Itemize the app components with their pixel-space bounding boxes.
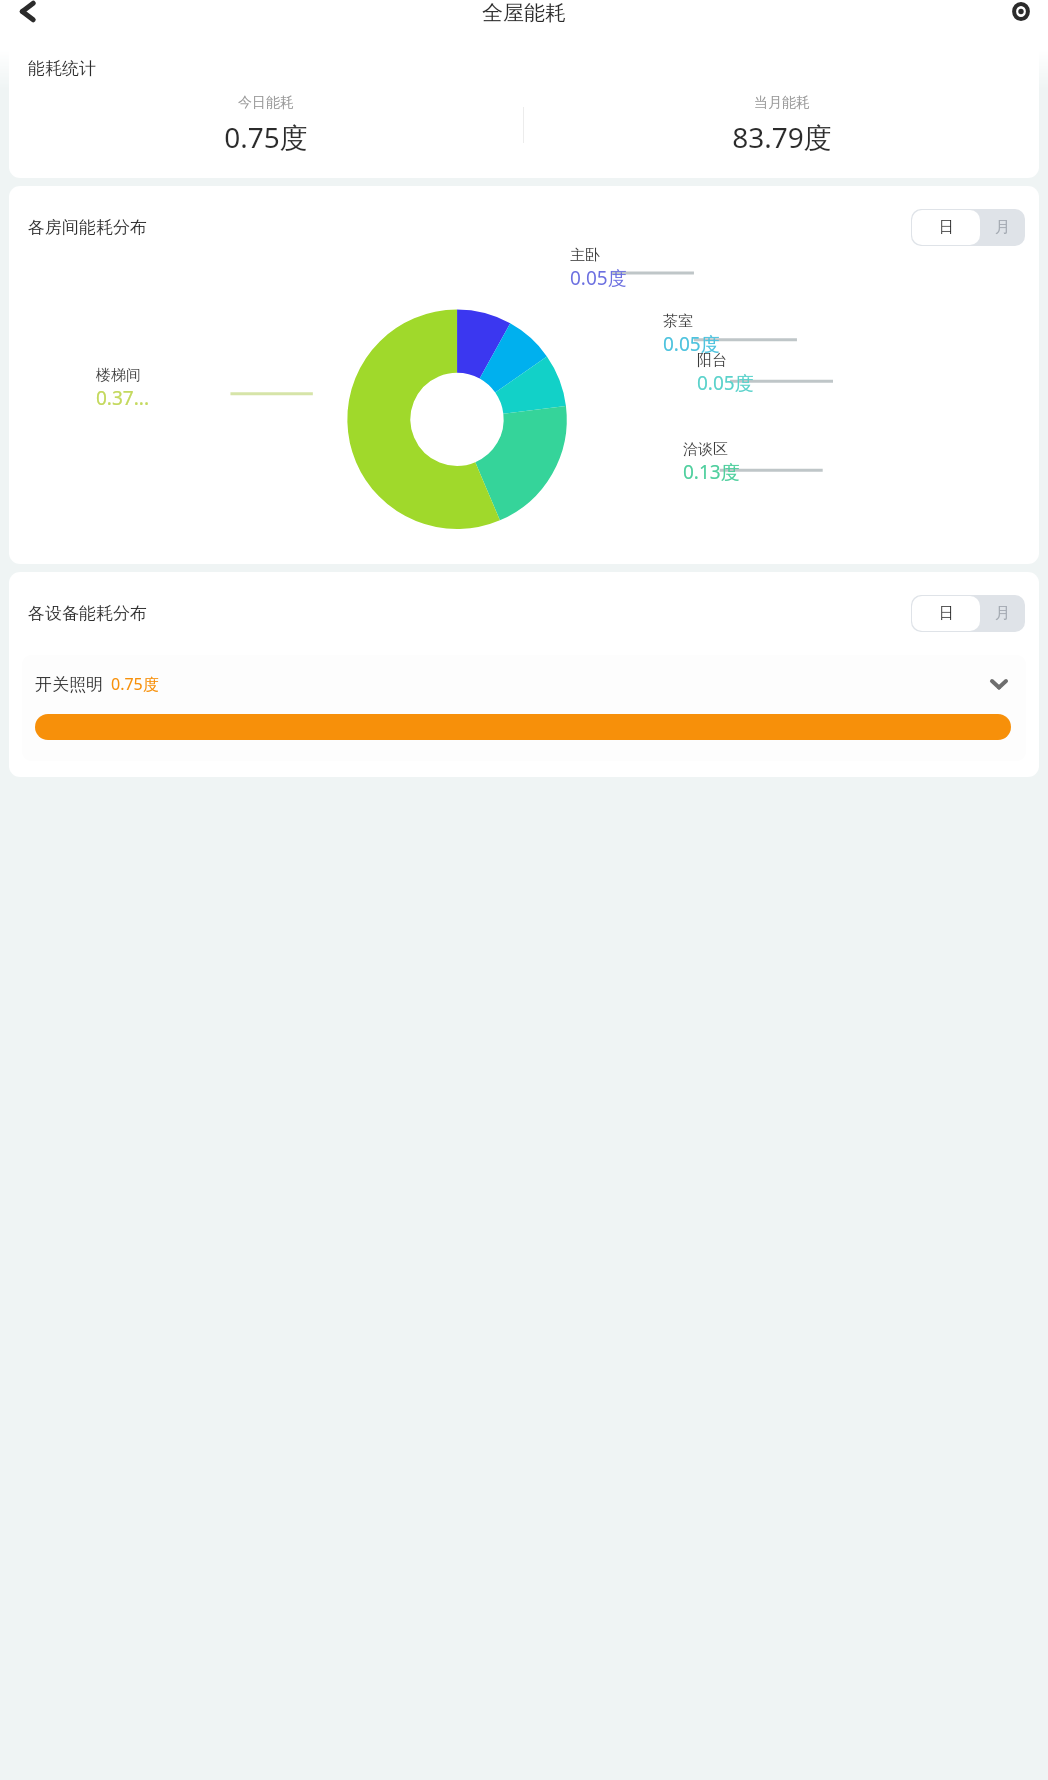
button[interactable]: 日: [912, 596, 980, 631]
staticText: 能耗统计: [28, 58, 96, 79]
button[interactable]: 月: [980, 209, 1025, 246]
other: Expand: [986, 671, 1012, 697]
staticText: 各设备能耗分布: [28, 603, 147, 624]
staticText: 0.05度: [663, 331, 720, 357]
staticText: 洽谈区: [683, 440, 728, 459]
button[interactable]: More options: [1006, 0, 1036, 23]
staticText: 主卧: [570, 246, 600, 265]
staticText: 月: [995, 218, 1010, 237]
button[interactable]: 日: [912, 210, 980, 245]
staticText: 茶室: [663, 312, 693, 331]
staticText: 各房间能耗分布: [28, 217, 147, 238]
staticText: 今日能耗: [238, 94, 294, 112]
staticText: 楼梯间: [96, 366, 141, 385]
staticText: 日: [939, 604, 954, 623]
button[interactable]: 开关照明: [22, 655, 1026, 761]
staticText: 0.05度: [570, 265, 627, 291]
staticText: 83.79度: [732, 118, 832, 156]
staticText: 阳台: [697, 351, 727, 370]
staticText: 0.05度: [697, 370, 754, 396]
staticText: 全屋能耗: [482, 0, 566, 23]
staticText: 0.75度: [224, 118, 308, 156]
staticText: 当月能耗: [754, 94, 810, 112]
staticText: 0.37...: [96, 385, 149, 411]
staticText: 开关照明: [35, 674, 103, 695]
staticText: 日: [939, 218, 954, 237]
staticText: 0.75度: [111, 673, 159, 695]
button[interactable]: Back: [6, 0, 40, 23]
staticText: 0.13度: [683, 459, 740, 485]
staticText: 月: [995, 604, 1010, 623]
button[interactable]: 月: [980, 595, 1025, 632]
